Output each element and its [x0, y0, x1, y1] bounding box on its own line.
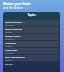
staticText: 15 lessons — [5, 38, 14, 40]
staticText: and The Actions — [3, 6, 24, 10]
staticText: Leading Teams — [5, 35, 21, 38]
staticText: Productivity — [5, 49, 18, 52]
staticText: Time Management — [5, 56, 25, 59]
button[interactable]: Productivity — [4, 48, 59, 54]
staticText: 9 lessons — [5, 45, 13, 47]
button[interactable]: Motivation — [4, 41, 59, 47]
staticText: 12 lessons — [5, 24, 14, 26]
staticText: Topics — [4, 13, 59, 17]
staticText: 7 lessons — [5, 59, 13, 61]
button[interactable]: Group Dynamics — [4, 27, 59, 33]
staticText: Motivation — [5, 42, 17, 45]
staticText: 8 lessons — [5, 31, 13, 33]
button[interactable]: Leading Teams — [4, 34, 59, 40]
button[interactable]: Time Management — [4, 55, 59, 61]
button[interactable]: Critical Thinking — [4, 20, 59, 26]
staticText: Master your Goals — [3, 2, 31, 6]
staticText: 11 lessons — [5, 52, 14, 54]
button[interactable]: Explore — [5, 63, 13, 66]
staticText: Critical Thinking — [5, 21, 22, 24]
staticText: Group Dynamics — [5, 28, 23, 31]
